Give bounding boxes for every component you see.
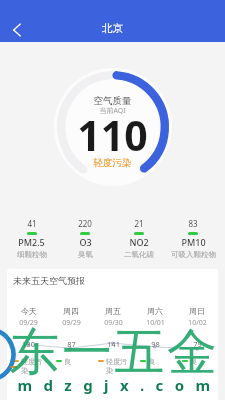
- staticText: PM2.5: [18, 236, 45, 248]
- staticText: 141: [107, 339, 120, 349]
- staticText: 41: [27, 218, 37, 229]
- staticText: 09/29: [62, 318, 81, 328]
- staticText: 周日: [189, 306, 205, 316]
- staticText: 今天: [21, 306, 37, 316]
- staticText: 110: [0, 107, 225, 163]
- staticText: 良: [148, 357, 155, 366]
- staticText: mdzgjx.com: [7, 375, 225, 395]
- staticText: 轻度污染: [0, 157, 225, 169]
- staticText: 轻度污染: [106, 357, 131, 375]
- staticText: 09/30: [104, 318, 123, 328]
- staticText: 良: [64, 357, 71, 366]
- button[interactable]: Back: [4, 17, 29, 42]
- staticText: 空气质量: [0, 95, 225, 107]
- staticText: 10/02: [188, 318, 207, 328]
- staticText: 130: [22, 339, 35, 349]
- staticText: 87: [67, 339, 76, 349]
- staticText: 周六: [147, 306, 163, 316]
- staticText: 北京: [0, 22, 225, 35]
- staticText: 83: [188, 218, 198, 229]
- staticText: 东一五金: [2, 321, 225, 384]
- staticText: 09/29: [19, 318, 38, 328]
- staticText: 21: [134, 218, 144, 229]
- staticText: 轻度污染: [21, 357, 47, 375]
- staticText: 10/01: [146, 318, 165, 328]
- staticText: 当前AQI: [0, 106, 225, 116]
- staticText: PM10: [181, 236, 206, 248]
- staticText: 周四: [63, 306, 79, 316]
- staticText: 臭氧: [78, 250, 93, 259]
- staticText: 220: [78, 218, 92, 229]
- staticText: O3: [79, 236, 92, 248]
- staticText: 二氧化碳: [124, 250, 154, 259]
- staticText: 周五: [105, 306, 121, 316]
- staticText: 79: [193, 339, 202, 349]
- staticText: 可吸入颗粒物: [171, 250, 216, 259]
- staticText: 未来五天空气预报: [13, 275, 85, 286]
- staticText: 细颗粒物: [17, 250, 47, 259]
- staticText: NO2: [129, 236, 149, 248]
- staticText: 98: [151, 339, 160, 349]
- staticText: 良: [190, 357, 197, 366]
